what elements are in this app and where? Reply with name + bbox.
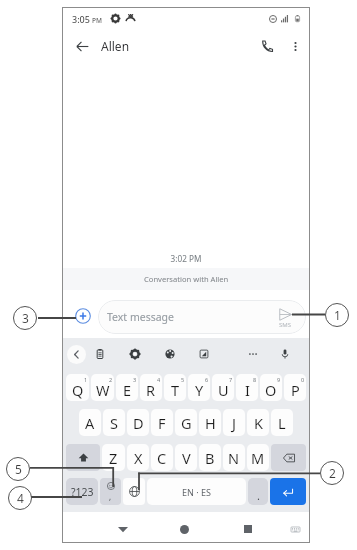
button[interactable]: Q <box>66 374 89 401</box>
button[interactable]: G <box>175 409 197 436</box>
staticText: 9 <box>277 376 281 383</box>
button[interactable]: More options <box>244 345 262 363</box>
button[interactable]: K <box>247 409 269 436</box>
button[interactable]: Call <box>256 35 278 57</box>
staticText: T <box>171 380 180 400</box>
button[interactable]: Change keyboard language <box>123 478 145 505</box>
button[interactable]: Z <box>102 444 125 471</box>
button[interactable]: A <box>79 409 101 436</box>
button[interactable]: . <box>248 478 268 505</box>
button[interactable]: Collapse toolbar <box>67 345 86 364</box>
staticText: J <box>232 413 236 433</box>
staticText: C <box>157 448 167 468</box>
button[interactable]: Emoji and comma <box>100 478 121 505</box>
staticText: 8 <box>253 376 257 383</box>
staticText: SMS <box>279 321 292 329</box>
button[interactable]: R <box>140 374 162 401</box>
staticText: PM <box>92 16 102 25</box>
button[interactable]: T <box>164 374 186 401</box>
button[interactable]: Back <box>71 35 93 57</box>
staticText: 5 <box>15 461 22 477</box>
staticText: . <box>257 488 260 503</box>
staticText: R <box>146 380 156 400</box>
button[interactable]: H <box>199 409 221 436</box>
staticText: P <box>291 380 300 400</box>
button[interactable]: EN · ES <box>147 478 246 505</box>
button[interactable]: Back <box>112 518 134 540</box>
button[interactable]: X <box>127 444 149 471</box>
button[interactable]: Text message <box>98 300 306 334</box>
button[interactable]: Add attachment <box>73 306 93 326</box>
staticText: M <box>251 448 265 468</box>
button[interactable]: Voice input <box>276 345 294 363</box>
staticText: 5 <box>181 376 185 383</box>
button[interactable]: Shift <box>66 444 100 471</box>
staticText: 0 <box>301 376 305 383</box>
staticText: 1 <box>84 376 88 383</box>
button[interactable]: ?123 <box>66 478 98 505</box>
staticText: 4 <box>157 376 161 383</box>
staticText: 3:05 <box>72 13 90 25</box>
button[interactable]: O <box>260 374 282 401</box>
staticText: Conversation with Allen <box>144 274 229 284</box>
staticText: G <box>181 413 192 433</box>
button[interactable]: S <box>103 409 125 436</box>
button[interactable]: More options <box>284 35 306 57</box>
button[interactable]: U <box>212 374 234 401</box>
staticText: , <box>109 491 112 502</box>
staticText: X <box>134 448 143 468</box>
button[interactable]: Y <box>188 374 210 401</box>
button[interactable]: B <box>199 444 221 471</box>
staticText: W <box>96 380 110 400</box>
button[interactable]: L <box>271 409 293 436</box>
button[interactable]: Hide keyboard <box>284 518 306 540</box>
staticText: H <box>205 413 216 433</box>
button[interactable]: E <box>116 374 138 401</box>
staticText: O <box>265 380 277 400</box>
staticText: S <box>110 413 118 433</box>
staticText: L <box>278 413 286 433</box>
button[interactable]: D <box>127 409 149 436</box>
button[interactable]: Backspace <box>271 444 306 471</box>
staticText: ?123 <box>71 485 94 499</box>
button[interactable]: M <box>247 444 269 471</box>
staticText: 2 <box>109 376 113 383</box>
staticText: 2 <box>329 465 336 481</box>
staticText: Y <box>195 380 204 400</box>
button[interactable]: F <box>151 409 173 436</box>
button[interactable]: Enter <box>270 478 306 505</box>
staticText: 3 <box>22 310 29 326</box>
button[interactable]: Home <box>173 518 195 540</box>
staticText: 3:02 PM <box>62 253 310 264</box>
button[interactable]: P <box>284 374 306 401</box>
staticText: A <box>85 413 95 433</box>
staticText: U <box>218 380 229 400</box>
button[interactable]: Clipboard <box>91 345 109 363</box>
staticText: B <box>205 448 215 468</box>
button[interactable]: I <box>236 374 258 401</box>
staticText: V <box>182 448 191 468</box>
staticText: EN · ES <box>182 486 211 498</box>
staticText: 3 <box>133 376 137 383</box>
staticText: D <box>133 413 144 433</box>
button[interactable]: Recent apps <box>237 518 259 540</box>
staticText: I <box>245 380 250 400</box>
staticText: Z <box>109 448 118 468</box>
button[interactable]: W <box>91 374 114 401</box>
staticText: N <box>228 448 240 468</box>
staticText: F <box>158 413 166 433</box>
button[interactable]: Keyboard settings <box>126 345 144 363</box>
button[interactable]: Text editing <box>195 345 213 363</box>
button[interactable]: C <box>151 444 173 471</box>
button[interactable]: V <box>175 444 197 471</box>
button[interactable]: Theme <box>161 345 179 363</box>
staticText: E <box>123 380 132 400</box>
staticText: Allen <box>101 38 130 54</box>
staticText: 4 <box>17 490 24 506</box>
button[interactable]: J <box>223 409 245 436</box>
staticText: 1 <box>334 307 341 323</box>
button[interactable]: N <box>223 444 245 471</box>
staticText: Q <box>72 380 84 400</box>
staticText: 7 <box>229 376 233 383</box>
staticText: Text message <box>107 310 174 324</box>
